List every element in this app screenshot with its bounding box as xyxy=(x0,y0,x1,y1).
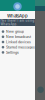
button[interactable]: Starred messages xyxy=(0,45,35,50)
staticText: Linked devices xyxy=(6,40,31,44)
staticText: Hey there! I am using WhatsApp. xyxy=(0,19,34,26)
staticText: Starred messages xyxy=(6,45,35,49)
button[interactable]: Linked devices xyxy=(0,39,35,45)
button[interactable]: New broadcast xyxy=(0,34,35,39)
staticText: WhatsApp xyxy=(7,13,28,19)
button[interactable]: New group xyxy=(0,29,35,34)
staticText: New broadcast xyxy=(6,35,31,39)
staticText: New group xyxy=(6,29,24,34)
button[interactable]: Settings xyxy=(0,50,35,55)
staticText: Settings xyxy=(6,50,19,54)
